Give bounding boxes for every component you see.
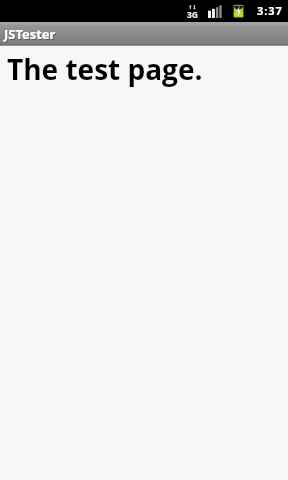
staticText: JSTester <box>4 25 56 43</box>
staticText: 3G <box>187 9 198 21</box>
other: Battery charging <box>233 0 244 22</box>
staticText: JSTester <box>5 26 57 44</box>
other: 3G data <box>188 0 197 22</box>
button[interactable]: JSTester <box>0 22 288 45</box>
staticText: 3:37 <box>257 3 283 18</box>
other: Signal strength <box>208 0 222 22</box>
staticText: The test page. <box>7 50 203 88</box>
